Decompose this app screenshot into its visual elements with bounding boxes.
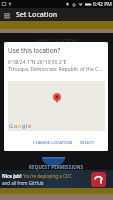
staticText: REQUEST PERMISSIONS — [29, 164, 84, 170]
staticText: G — [9, 122, 14, 129]
staticText: o — [18, 122, 22, 129]
staticText: You're deploying a CI/C — [23, 173, 72, 179]
staticText: SELECT — [80, 140, 95, 146]
staticText: Tshuapa, Democratic Republic of the C... — [8, 66, 103, 73]
staticText: g — [22, 122, 26, 129]
button[interactable]: REQUEST PERMISSIONS — [0, 161, 113, 172]
button[interactable]: CHANGE LOCATION — [31, 138, 75, 148]
staticText: CHANGE LOCATION — [33, 140, 73, 146]
staticText: Use this location? — [8, 46, 61, 55]
button[interactable]: SELECT — [78, 138, 97, 148]
button[interactable]: Nice job! — [0, 170, 113, 188]
button[interactable]: Open navigation menu — [2, 10, 12, 20]
staticText: Nice job! — [2, 173, 23, 179]
staticText: FAKE LOCATION — [36, 38, 78, 45]
staticText: Set Location — [16, 10, 58, 20]
staticText: 6:42 PM — [93, 1, 112, 8]
staticText: e — [28, 122, 32, 129]
staticText: l — [26, 122, 28, 129]
staticText: 6°38'24.1"N 26°19'30.2"E — [8, 59, 67, 66]
staticText: and all from GitHub — [2, 180, 44, 186]
staticText: o — [14, 122, 18, 129]
